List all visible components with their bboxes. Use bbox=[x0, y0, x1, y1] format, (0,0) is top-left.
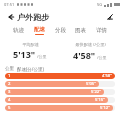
staticText: 4'58" bbox=[102, 73, 112, 79]
staticText: 5 bbox=[8, 105, 11, 111]
button[interactable]: 2 bbox=[5, 81, 115, 87]
staticText: /公里 bbox=[97, 55, 107, 60]
staticText: 图表 bbox=[75, 27, 86, 34]
staticText: 公里 bbox=[5, 66, 14, 72]
staticText: 5G bbox=[97, 2, 103, 7]
staticText: 4'58" bbox=[73, 49, 96, 61]
staticText: 轨迹 bbox=[13, 27, 24, 34]
button[interactable]: 详情 bbox=[95, 27, 108, 34]
button[interactable]: 配速 bbox=[33, 26, 46, 35]
staticText: 配速(分/公里) bbox=[17, 66, 44, 72]
button[interactable]: 分段 bbox=[54, 27, 67, 34]
button[interactable]: 5 bbox=[5, 105, 115, 111]
staticText: 5'22" bbox=[91, 89, 101, 95]
button[interactable]: 轨迹 bbox=[12, 27, 25, 34]
button[interactable]: 平均配速 bbox=[0, 42, 60, 60]
button[interactable]: 3 bbox=[5, 89, 115, 95]
staticText: /公里 bbox=[37, 54, 47, 59]
staticText: 2 bbox=[8, 81, 11, 87]
button[interactable]: 最快配速 (/公里) bbox=[60, 42, 120, 61]
staticText: 分段 bbox=[55, 27, 66, 34]
button[interactable]: 图表 bbox=[74, 27, 87, 34]
staticText: 4 bbox=[8, 97, 11, 103]
staticText: 5'13" bbox=[13, 48, 36, 60]
staticText: 1 bbox=[8, 73, 11, 79]
staticText: 户外跑步 bbox=[17, 12, 49, 22]
staticText: 配速 bbox=[34, 26, 45, 33]
staticText: 07:51 bbox=[4, 2, 15, 7]
staticText: 平均配速 bbox=[22, 42, 39, 47]
button[interactable]: 4 bbox=[5, 97, 115, 103]
button[interactable]: 分享 bbox=[104, 11, 115, 22]
staticText: 详情 bbox=[96, 27, 107, 34]
button[interactable]: 返回 bbox=[5, 11, 16, 22]
staticText: 5'12" bbox=[100, 105, 110, 111]
staticText: 5'05" bbox=[86, 81, 96, 87]
staticText: 5'15" bbox=[95, 97, 105, 103]
staticText: 最快配速 (/公里) bbox=[75, 42, 106, 48]
staticText: 3 bbox=[8, 89, 11, 95]
button[interactable]: 1 bbox=[5, 73, 115, 79]
